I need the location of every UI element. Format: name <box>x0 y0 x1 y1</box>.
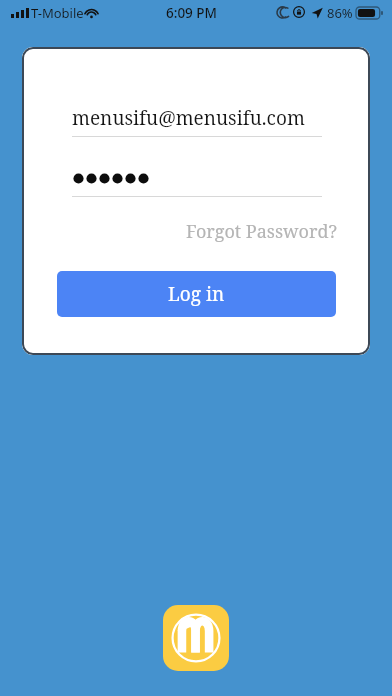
button[interactable]: menusifu@menusifu.com <box>72 99 322 137</box>
staticText: 6:09 PM <box>166 4 217 22</box>
staticText: Log in <box>168 281 225 307</box>
button[interactable]: Log in <box>57 271 336 317</box>
button[interactable]: Forgot Password? <box>182 214 338 248</box>
staticText: 86% <box>327 4 353 22</box>
button[interactable] <box>72 159 322 197</box>
staticText: T-Mobile <box>31 4 84 22</box>
other: MenuSifu logo <box>163 605 229 671</box>
staticText: menusifu@menusifu.com <box>72 105 305 131</box>
staticText: Forgot Password? <box>186 219 338 244</box>
